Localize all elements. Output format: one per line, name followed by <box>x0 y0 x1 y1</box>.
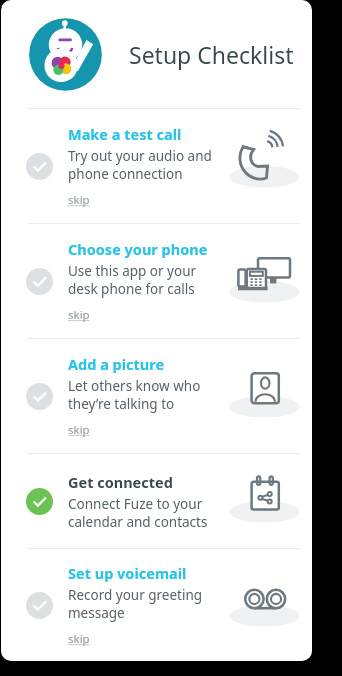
button[interactable]: Mark complete <box>1 224 312 338</box>
staticText: message <box>68 604 125 622</box>
button[interactable]: skip <box>68 422 90 438</box>
staticText: skip <box>68 192 90 208</box>
button[interactable]: Mark complete <box>1 549 312 661</box>
staticText: they’re talking to <box>68 395 175 413</box>
button[interactable]: skip <box>68 192 90 208</box>
staticText: Let others know who <box>68 377 201 395</box>
button[interactable]: Mark complete <box>26 592 53 619</box>
staticText: Connect Fuze to your <box>68 495 203 513</box>
button[interactable]: skip <box>68 307 90 323</box>
staticText: Set up voicemail <box>68 563 187 583</box>
staticText: desk phone for calls <box>68 280 195 298</box>
staticText: calendar and contacts <box>68 513 208 531</box>
staticText: Try out your audio and <box>68 147 212 165</box>
button[interactable]: Completed <box>1 454 312 548</box>
button[interactable]: Completed <box>26 488 53 515</box>
staticText: Make a test call <box>68 124 182 144</box>
staticText: Get connected <box>68 472 173 492</box>
button[interactable]: Mark complete <box>1 339 312 453</box>
button[interactable]: Mark complete <box>1 109 312 223</box>
staticText: Choose your phone <box>68 239 208 259</box>
staticText: skip <box>68 422 90 438</box>
staticText: Setup Checklist <box>129 39 294 70</box>
button[interactable]: Mark complete <box>26 383 53 410</box>
staticText: Record your greeting <box>68 586 203 604</box>
staticText: Use this app or your <box>68 262 197 280</box>
staticText: skip <box>68 631 90 647</box>
staticText: skip <box>68 307 90 323</box>
staticText: phone connection <box>68 165 183 183</box>
staticText: Add a picture <box>68 354 165 374</box>
button[interactable]: Mark complete <box>26 268 53 295</box>
button[interactable]: Mark complete <box>26 153 53 180</box>
button[interactable]: skip <box>68 631 90 647</box>
